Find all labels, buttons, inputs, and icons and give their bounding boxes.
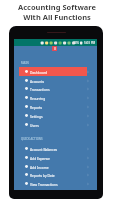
staticText: Accounts — [30, 79, 45, 83]
button[interactable]: Recurring — [14, 93, 97, 102]
button[interactable]: Add Income — [14, 162, 97, 171]
staticText: Dashboard — [30, 70, 48, 74]
staticText: QUICK ACTIONS — [21, 137, 43, 141]
staticText: Reports — [30, 105, 43, 109]
button[interactable]: Settings — [14, 111, 97, 120]
staticText: MAIN — [21, 61, 29, 65]
button[interactable]: Reports — [14, 102, 97, 111]
staticText: Accounting Software — [18, 2, 96, 12]
staticText: Add Income — [30, 165, 49, 169]
staticText: Transactions — [30, 87, 50, 91]
staticText: 5:03 PM — [84, 41, 96, 45]
button[interactable]: View Transactions — [14, 179, 97, 188]
staticText: Settings — [30, 114, 43, 118]
button[interactable]: Account Balances — [14, 144, 97, 153]
staticText: Recurring — [30, 96, 46, 100]
button[interactable]: Dashboard — [14, 67, 97, 76]
button[interactable]: Users — [14, 120, 97, 129]
staticText: Users — [30, 123, 39, 127]
staticText: With All Functions — [23, 12, 91, 22]
staticText: Account Balances — [30, 147, 58, 151]
button[interactable]: Accounts — [14, 76, 97, 85]
button[interactable]: Add Expense — [14, 153, 97, 162]
staticText: View Transactions — [30, 182, 58, 186]
button[interactable]: Transactions — [14, 84, 97, 93]
button[interactable]: Reports by Date — [14, 170, 97, 179]
staticText: Add Expense — [30, 156, 50, 160]
staticText: 44% — [73, 41, 79, 45]
staticText: Reports by Date — [30, 173, 55, 177]
